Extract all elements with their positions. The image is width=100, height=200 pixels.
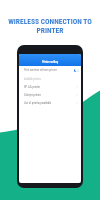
button[interactable]: HP LJ4 printer	[19, 83, 81, 91]
staticText: WIRELESS CONNECTION TO PRINTER	[0, 17, 100, 35]
staticText: HP LJ4 printer	[24, 85, 41, 89]
staticText: Printer setting	[42, 60, 58, 64]
button[interactable]: Colorjet printer	[19, 91, 81, 99]
staticText: Available printers	[24, 77, 42, 80]
button[interactable]: List of printing available	[19, 99, 81, 107]
staticText: Print wireless to/from printer	[24, 68, 57, 72]
staticText: List of printing available	[24, 101, 52, 105]
button[interactable]: Print wireless to/from printer	[19, 66, 81, 74]
staticText: Colorjet printer	[24, 93, 41, 97]
